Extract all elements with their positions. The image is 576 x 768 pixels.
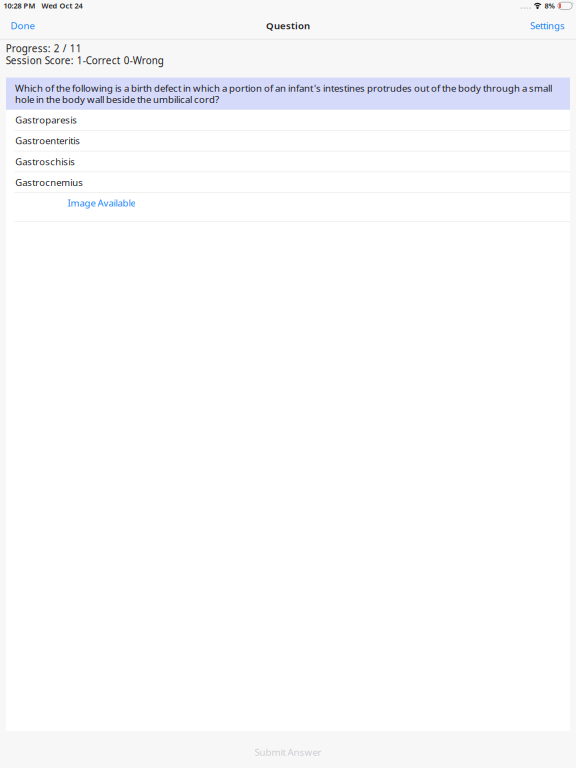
button[interactable]: Image Available	[14, 193, 143, 221]
staticText: Gastroenteritis	[15, 135, 80, 146]
staticText: Question	[266, 20, 310, 31]
button[interactable]: Gastroschisis	[6, 151, 570, 172]
staticText: Settings	[530, 20, 565, 31]
staticText: Which of the following is a birth defect…	[15, 82, 552, 105]
staticText: 10:28 PM	[3, 1, 35, 10]
button[interactable]: Done	[0, 11, 40, 39]
button[interactable]: Gastrocnemius	[6, 172, 570, 193]
button[interactable]: Settings	[524, 11, 576, 39]
staticText: 8%	[545, 1, 555, 10]
button[interactable]: Gastroenteritis	[6, 130, 570, 151]
staticText: Submit Answer	[254, 746, 321, 758]
staticText: Session Score: 1-Correct 0-Wrong	[6, 55, 164, 66]
button[interactable]: Gastroparesis	[6, 110, 570, 130]
staticText: Image Available	[67, 197, 135, 208]
staticText: Gastroschisis	[15, 156, 75, 167]
staticText: Progress: 2 / 11	[6, 43, 82, 54]
staticText: Gastrocnemius	[15, 176, 83, 188]
staticText: Gastroparesis	[15, 114, 77, 126]
staticText: Wed Oct 24	[41, 1, 82, 10]
staticText: Done	[10, 20, 34, 31]
